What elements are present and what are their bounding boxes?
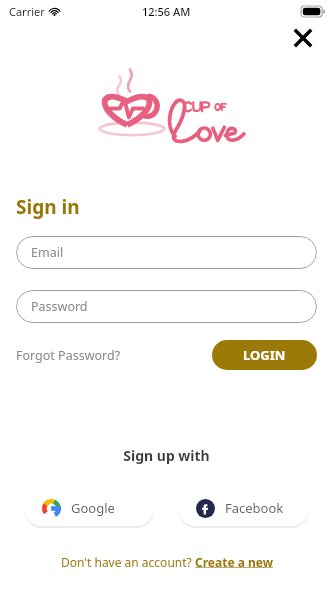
button[interactable]: Email — [16, 236, 317, 269]
button[interactable]: Forgot Password? — [16, 343, 121, 368]
staticText: Password — [31, 298, 88, 315]
button[interactable]: Password — [16, 290, 317, 323]
button[interactable]: Create a new — [195, 554, 273, 570]
staticText: Forgot Password? — [16, 347, 121, 364]
button[interactable]: LOGIN — [212, 340, 317, 370]
button[interactable]: Close — [289, 24, 317, 52]
staticText: Google — [71, 499, 115, 517]
staticText: Facebook — [225, 499, 284, 517]
staticText: Carrier — [9, 4, 45, 19]
staticText: Sign in — [16, 194, 80, 220]
staticText: LOGIN — [243, 346, 286, 364]
staticText: Email — [31, 244, 64, 261]
staticText: Create a new — [195, 554, 273, 570]
button[interactable]: Facebook — [178, 490, 309, 526]
button[interactable]: Google — [24, 490, 154, 526]
staticText: Don't have an account? — [61, 554, 195, 570]
staticText: Sign up with — [0, 446, 333, 465]
staticText: 12:56 AM — [142, 4, 191, 19]
